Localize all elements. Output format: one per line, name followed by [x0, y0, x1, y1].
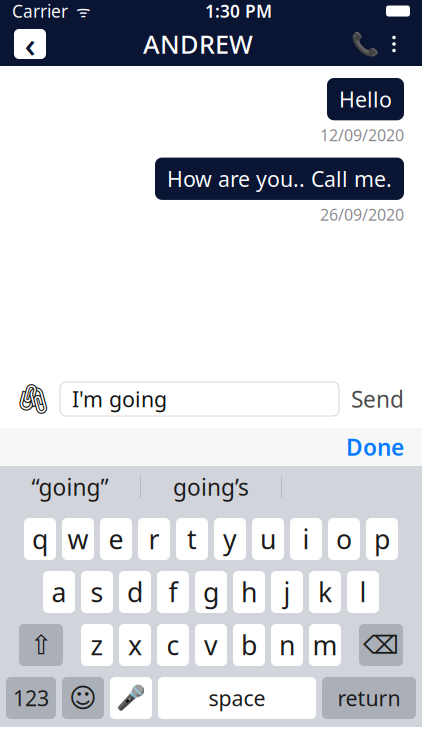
staticText: 1:30 PM: [205, 0, 272, 22]
button[interactable]: Emoji: [62, 677, 104, 719]
staticText: n: [279, 627, 295, 663]
staticText: “going”: [31, 472, 108, 502]
staticText: v: [204, 627, 218, 663]
button[interactable]: x: [119, 624, 151, 666]
staticText: going’s: [173, 472, 249, 502]
staticText: m: [312, 627, 337, 663]
staticText: 123: [13, 684, 49, 712]
staticText: 12/09/2020: [320, 124, 404, 145]
staticText: q: [32, 521, 48, 557]
button[interactable]: Shift: [19, 624, 63, 666]
staticText: 26/09/2020: [320, 204, 404, 225]
staticText: k: [318, 574, 332, 610]
staticText: ☺: [69, 683, 97, 713]
button[interactable]: Call: [350, 27, 380, 61]
button[interactable]: m: [309, 624, 341, 666]
button[interactable]: g: [195, 571, 227, 613]
staticText: 🎤: [116, 684, 146, 712]
staticText: g: [203, 574, 219, 610]
staticText: w: [67, 521, 88, 557]
button[interactable]: Attach file: [18, 382, 48, 416]
staticText: space: [208, 684, 265, 712]
button[interactable]: q: [24, 518, 56, 560]
button[interactable]: Delete: [359, 624, 403, 666]
button[interactable]: d: [119, 571, 151, 613]
staticText: a: [51, 574, 66, 610]
staticText: ANDREW: [143, 27, 253, 61]
staticText: ⌫: [363, 631, 399, 659]
button[interactable]: p: [366, 518, 398, 560]
button[interactable]: l: [347, 571, 379, 613]
staticText: I'm going: [72, 385, 167, 413]
staticText: l: [359, 574, 366, 610]
staticText: 🖇: [14, 382, 51, 416]
staticText: e: [108, 521, 123, 557]
staticText: Send: [351, 384, 404, 414]
button[interactable]: y: [214, 518, 246, 560]
staticText: return: [337, 684, 400, 712]
button[interactable]: More options: [380, 27, 408, 61]
staticText: s: [90, 574, 103, 610]
staticText: t: [187, 521, 197, 557]
button[interactable]: f: [157, 571, 189, 613]
staticText: How are you.. Call me.: [167, 165, 392, 193]
staticText: x: [128, 627, 142, 663]
button[interactable]: z: [81, 624, 113, 666]
staticText: ⇧: [30, 630, 52, 660]
staticText: u: [260, 521, 276, 557]
button[interactable]: 123: [6, 677, 56, 719]
button[interactable]: Done: [346, 432, 404, 462]
staticText: z: [90, 627, 103, 663]
button[interactable]: t: [176, 518, 208, 560]
button[interactable]: j: [271, 571, 303, 613]
staticText: y: [223, 521, 237, 557]
button[interactable]: return: [322, 677, 416, 719]
button[interactable]: r: [138, 518, 170, 560]
staticText: i: [302, 521, 309, 557]
button[interactable]: k: [309, 571, 341, 613]
button[interactable]: i: [290, 518, 322, 560]
staticText: ᯤ: [68, 0, 91, 22]
button[interactable]: c: [157, 624, 189, 666]
button[interactable]: “going”: [0, 466, 140, 508]
staticText: ‹: [24, 21, 35, 67]
button[interactable]: Back: [14, 29, 46, 59]
button[interactable]: e: [100, 518, 132, 560]
button[interactable]: going’s: [141, 466, 281, 508]
button[interactable]: space: [158, 677, 316, 719]
button[interactable]: o: [328, 518, 360, 560]
staticText: p: [374, 521, 390, 557]
staticText: Hello: [339, 85, 392, 113]
staticText: j: [283, 574, 290, 610]
button[interactable]: s: [81, 571, 113, 613]
button[interactable]: a: [43, 571, 75, 613]
button[interactable]: Dictation: [110, 677, 152, 719]
staticText: o: [336, 521, 352, 557]
staticText: Done: [346, 432, 404, 462]
button[interactable]: u: [252, 518, 284, 560]
button[interactable]: n: [271, 624, 303, 666]
button[interactable]: h: [233, 571, 265, 613]
staticText: r: [148, 521, 159, 557]
staticText: Carrier: [12, 0, 68, 22]
button[interactable]: b: [233, 624, 265, 666]
staticText: c: [166, 627, 179, 663]
staticText: 📞: [351, 31, 379, 57]
staticText: d: [127, 574, 143, 610]
button[interactable]: v: [195, 624, 227, 666]
button[interactable]: Send: [351, 384, 404, 414]
staticText: f: [168, 574, 177, 610]
button[interactable]: w: [62, 518, 94, 560]
staticText: b: [241, 627, 257, 663]
staticText: h: [241, 574, 257, 610]
